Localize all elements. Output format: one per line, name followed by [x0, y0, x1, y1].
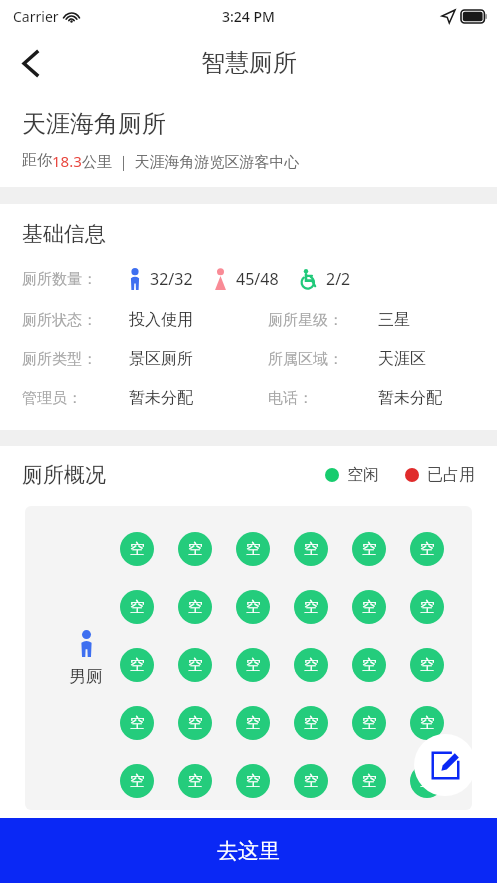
staticText: 空 [130, 714, 145, 733]
staticText: 景区厕所 [129, 349, 193, 369]
staticText: 空 [130, 656, 145, 675]
button[interactable]: 空 [410, 648, 444, 682]
button[interactable]: 空 [178, 648, 212, 682]
button[interactable]: 空 [178, 532, 212, 566]
staticText: 3:24 PM [222, 7, 275, 26]
staticText: 空闲 [347, 465, 379, 485]
button[interactable]: 空 [178, 590, 212, 624]
button[interactable]: Back [8, 41, 52, 85]
staticText: 厕所概况 [22, 462, 106, 488]
button[interactable]: 空 [294, 590, 328, 624]
staticText: 电话： [268, 389, 313, 408]
staticText: 空 [246, 656, 261, 675]
staticText: 空 [304, 598, 319, 617]
staticText: 厕所状态： [22, 311, 97, 330]
staticText: 空 [130, 598, 145, 617]
button[interactable]: 空 [236, 648, 270, 682]
staticText: 空 [420, 772, 435, 791]
staticText: Carrier [13, 7, 59, 26]
staticText: 三星 [378, 310, 410, 330]
staticText: 32/32 [150, 268, 193, 290]
staticText: 空 [304, 540, 319, 559]
staticText: 空 [362, 714, 377, 733]
staticText: 空 [420, 540, 435, 559]
staticText: 公里 ｜ 天涯海角游览区游客中心 [82, 151, 300, 171]
staticText: 空 [420, 656, 435, 675]
staticText: 空 [188, 714, 203, 733]
button[interactable]: 空 [410, 706, 444, 740]
staticText: 空 [362, 540, 377, 559]
staticText: 已占用 [427, 465, 475, 485]
staticText: 男厕 [69, 666, 103, 687]
button[interactable]: 空 [410, 532, 444, 566]
button[interactable]: 空 [294, 764, 328, 798]
button[interactable]: 空 [410, 590, 444, 624]
staticText: 空 [304, 772, 319, 791]
staticText: 45/48 [236, 268, 279, 290]
staticText: 空 [420, 714, 435, 733]
staticText: 空 [362, 656, 377, 675]
staticText: 空 [246, 540, 261, 559]
button[interactable]: 空 [178, 764, 212, 798]
button[interactable]: 空 [120, 532, 154, 566]
staticText: 空 [304, 656, 319, 675]
staticText: 18.3 [52, 151, 82, 171]
staticText: 空 [362, 772, 377, 791]
button[interactable]: Edit [414, 734, 476, 796]
staticText: 所属区域： [268, 350, 343, 369]
button[interactable]: 空 [410, 764, 444, 798]
staticText: 暂未分配 [378, 388, 442, 408]
staticText: 管理员： [22, 389, 82, 408]
button[interactable]: 空 [120, 590, 154, 624]
staticText: 空 [246, 714, 261, 733]
button[interactable]: 空 [178, 706, 212, 740]
button[interactable]: 空 [352, 706, 386, 740]
button[interactable]: 空 [120, 706, 154, 740]
staticText: 空 [420, 598, 435, 617]
staticText: 空 [130, 772, 145, 791]
staticText: 空 [246, 772, 261, 791]
button[interactable]: 空 [352, 532, 386, 566]
button[interactable]: 空 [120, 648, 154, 682]
staticText: 基础信息 [22, 221, 106, 247]
staticText: 暂未分配 [129, 388, 193, 408]
button[interactable]: 空 [236, 590, 270, 624]
staticText: 空 [188, 656, 203, 675]
button[interactable]: 空 [120, 764, 154, 798]
button[interactable]: 空 [236, 532, 270, 566]
button[interactable]: 空 [352, 648, 386, 682]
staticText: 去这里 [217, 838, 280, 864]
staticText: 空 [188, 772, 203, 791]
button[interactable]: 空 [236, 764, 270, 798]
staticText: 厕所数量： [22, 270, 97, 289]
staticText: 空 [362, 598, 377, 617]
button[interactable]: 去这里 [0, 818, 497, 883]
staticText: 空 [188, 540, 203, 559]
staticText: 厕所类型： [22, 350, 97, 369]
staticText: 空 [188, 598, 203, 617]
button[interactable]: 空 [294, 648, 328, 682]
staticText: 距你 [22, 151, 52, 170]
staticText: 智慧厕所 [201, 48, 297, 78]
staticText: 天涯海角厕所 [22, 109, 166, 139]
staticText: 投入使用 [129, 310, 193, 330]
staticText: 空 [246, 598, 261, 617]
staticText: 厕所星级： [268, 311, 343, 330]
staticText: 空 [130, 540, 145, 559]
staticText: 空 [304, 714, 319, 733]
button[interactable]: 空 [294, 706, 328, 740]
staticText: 天涯区 [378, 349, 426, 369]
staticText: 2/2 [326, 268, 351, 290]
button[interactable]: 空 [294, 532, 328, 566]
button[interactable]: 空 [352, 764, 386, 798]
button[interactable]: 空 [352, 590, 386, 624]
button[interactable]: 空 [236, 706, 270, 740]
